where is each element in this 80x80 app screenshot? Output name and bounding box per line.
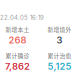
staticText: 新增本土 <box>5 25 29 33</box>
staticText: 累计治愈 <box>47 51 71 60</box>
staticText: 22.04.05 16:19 <box>0 14 44 21</box>
staticText: 3 <box>56 34 62 46</box>
staticText: 新增境外 <box>47 25 71 33</box>
staticText: 累计确诊 <box>5 51 29 60</box>
staticText: 268 <box>8 34 26 46</box>
staticText: 7,862 <box>5 61 30 72</box>
staticText: 5,125 <box>47 61 71 72</box>
